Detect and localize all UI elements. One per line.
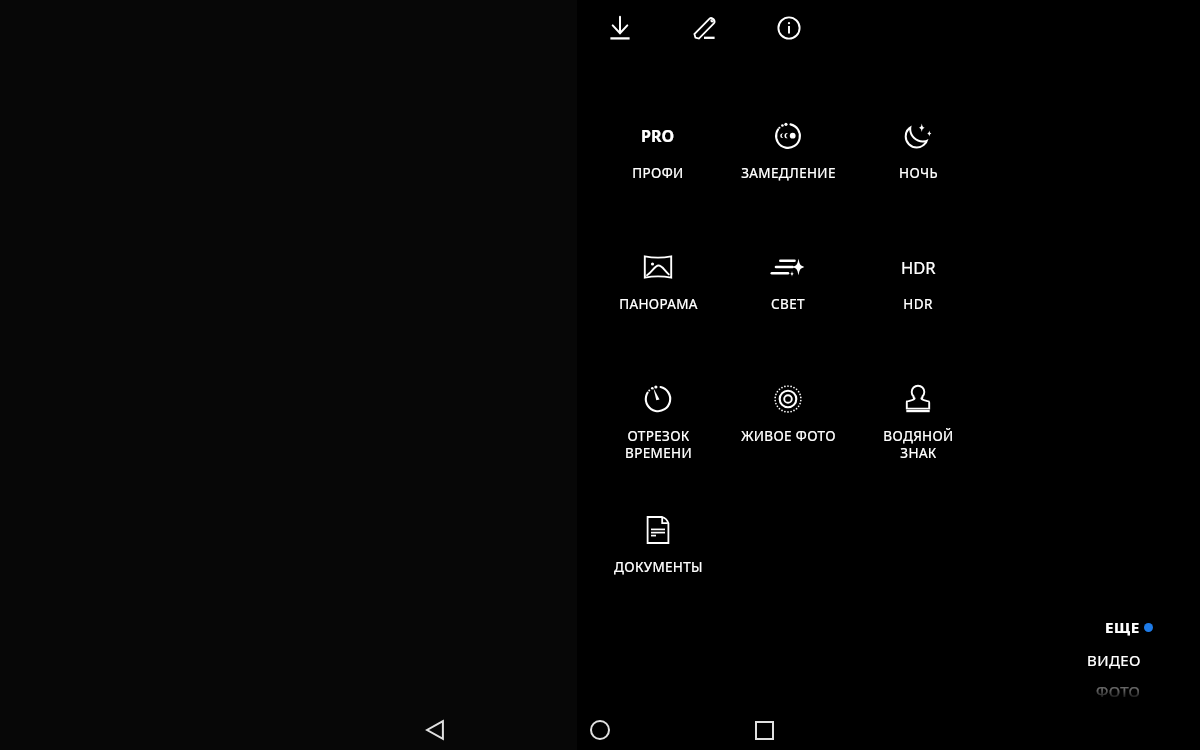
button[interactable]: ВОДЯНОЙ ЗНАК xyxy=(848,374,988,460)
button[interactable]: НОЧЬ xyxy=(848,111,988,197)
button[interactable]: ЗАМЕДЛЕНИЕ xyxy=(718,111,858,197)
staticText: ЗАМЕДЛЕНИЕ xyxy=(741,164,836,182)
button[interactable]: ЖИВОЕ ФОТО xyxy=(718,374,858,460)
button[interactable]: PRO xyxy=(588,111,728,197)
staticText: ПРОФИ xyxy=(632,164,684,182)
button[interactable]: ПАНОРАМА xyxy=(588,242,728,328)
button[interactable]: ВИДЕО xyxy=(1035,646,1141,674)
staticText: ДОКУМЕНТЫ xyxy=(614,558,703,576)
button[interactable]: Home xyxy=(570,708,630,750)
button[interactable]: Back xyxy=(405,708,465,750)
button[interactable]: Recents xyxy=(734,708,794,750)
staticText: PRO xyxy=(641,125,675,147)
button[interactable]: Edit xyxy=(681,4,729,52)
staticText: HDR xyxy=(901,256,936,278)
button[interactable]: ЕЩЕ xyxy=(1035,613,1153,641)
staticText: ВИДЕО xyxy=(1087,650,1141,670)
staticText: ЖИВОЕ ФОТО xyxy=(741,427,836,445)
staticText: ЕЩЕ xyxy=(1105,617,1140,637)
button[interactable]: HDR xyxy=(848,242,988,328)
staticText: ОТРЕЗОК ВРЕМЕНИ xyxy=(625,427,692,460)
staticText: НОЧЬ xyxy=(899,164,938,182)
staticText: ФОТО xyxy=(1096,681,1141,701)
button[interactable]: СВЕТ xyxy=(718,242,858,328)
staticText: ПАНОРАМА xyxy=(619,295,698,313)
staticText: ВОДЯНОЙ ЗНАК xyxy=(883,427,954,460)
button[interactable]: Info xyxy=(765,4,813,52)
button[interactable]: ФОТО xyxy=(1035,677,1141,705)
staticText: СВЕТ xyxy=(771,295,805,313)
button[interactable]: ДОКУМЕНТЫ xyxy=(588,505,728,591)
button[interactable]: Download xyxy=(596,4,644,52)
button[interactable]: ОТРЕЗОК ВРЕМЕНИ xyxy=(588,374,728,460)
staticText: HDR xyxy=(903,295,933,313)
